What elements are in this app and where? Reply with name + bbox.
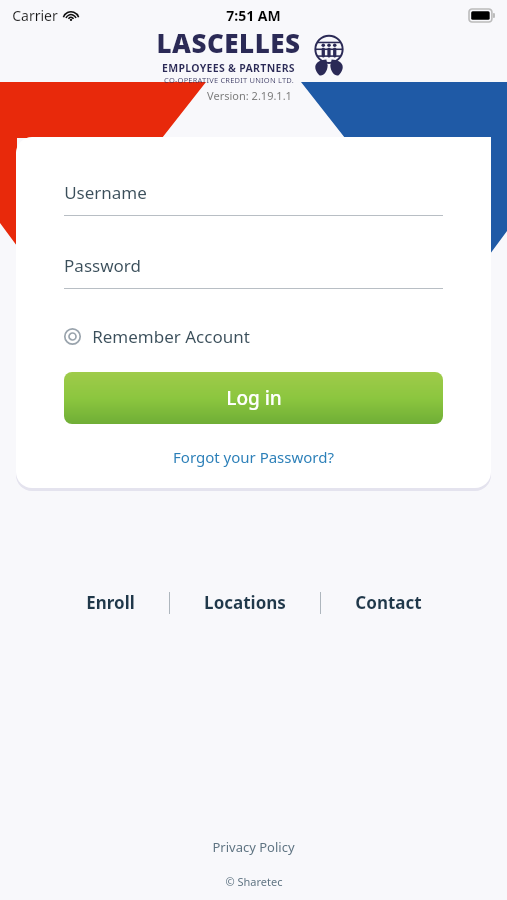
staticText: Password	[64, 254, 141, 277]
button[interactable]: Forgot your Password?	[64, 444, 443, 470]
button[interactable]: Contact	[345, 585, 432, 620]
button[interactable]: Log in	[64, 372, 443, 424]
button[interactable]: Password	[64, 254, 443, 289]
staticText: Forgot your Password?	[173, 447, 334, 467]
staticText: LASCELLES	[156, 25, 301, 60]
button[interactable]: Enroll	[76, 585, 145, 620]
button[interactable]: Locations	[194, 585, 296, 620]
staticText: Carrier	[12, 6, 58, 25]
staticText: Version: 2.19.1.1	[207, 88, 292, 103]
staticText: Locations	[204, 591, 286, 614]
staticText: Remember Account	[92, 325, 250, 348]
staticText: 7:51 AM	[226, 6, 281, 25]
staticText: Username	[64, 181, 147, 204]
button[interactable]: Privacy Policy	[204, 836, 303, 858]
staticText: Enroll	[86, 591, 135, 614]
staticText: Contact	[355, 591, 422, 614]
staticText: CO-OPERATIVE CREDIT UNION LTD.	[164, 75, 294, 85]
staticText: Privacy Policy	[212, 838, 295, 856]
button[interactable]: Username	[64, 181, 443, 216]
button[interactable]: Remember Account	[64, 321, 250, 352]
staticText: Log in	[226, 385, 282, 411]
staticText: EMPLOYEES & PARTNERS	[162, 61, 295, 75]
staticText: © Sharetec	[225, 874, 283, 889]
